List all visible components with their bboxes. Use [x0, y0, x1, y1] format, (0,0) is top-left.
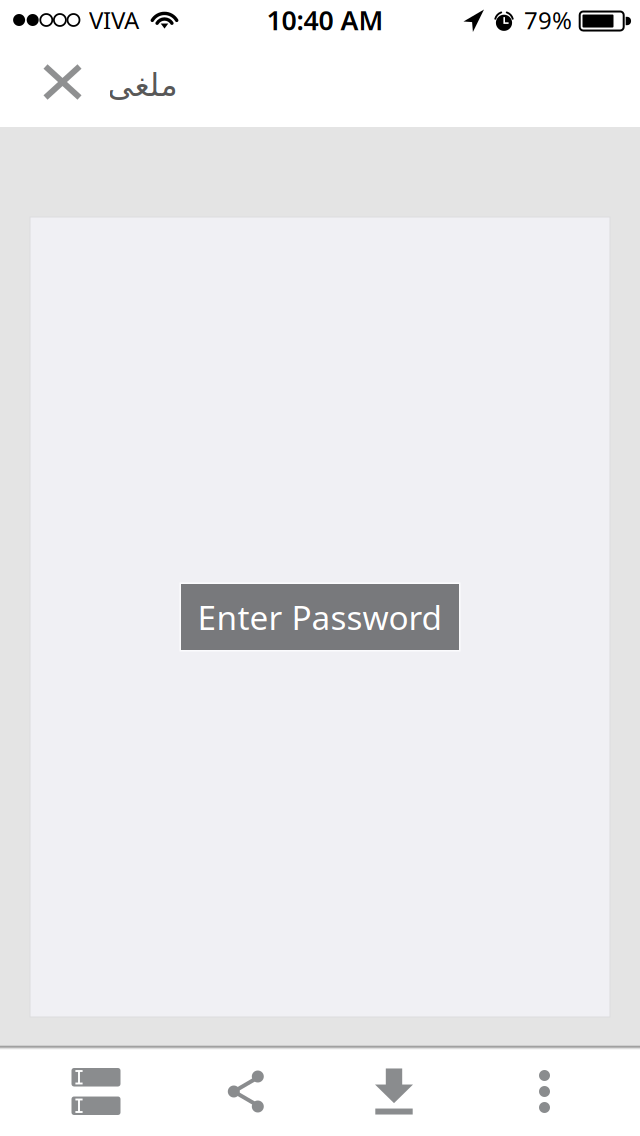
- staticText: VIVA: [89, 4, 139, 36]
- button[interactable]: Enter Password: [179, 582, 460, 651]
- staticText: 10:40 AM: [266, 2, 383, 38]
- button[interactable]: Share: [186, 1048, 306, 1135]
- button[interactable]: Fill form: [36, 1048, 156, 1135]
- staticText: ملغى: [107, 67, 177, 103]
- button[interactable]: Close: [22, 45, 102, 119]
- button[interactable]: More options: [484, 1048, 604, 1135]
- button[interactable]: Download: [334, 1048, 454, 1135]
- staticText: 79%: [524, 4, 572, 36]
- staticText: Enter Password: [197, 595, 442, 639]
